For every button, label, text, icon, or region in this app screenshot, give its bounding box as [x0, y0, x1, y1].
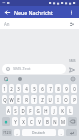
staticText: 2: [10, 86, 13, 92]
staticText: W: [9, 97, 14, 103]
staticText: U: [48, 97, 52, 103]
staticText: ?123: [3, 130, 11, 135]
staticText: H: [44, 108, 48, 114]
button[interactable]: C: [28, 117, 34, 126]
staticText: 7: [49, 86, 52, 92]
staticText: Neue Nachricht: [14, 9, 53, 16]
button[interactable]: Q: [2, 95, 7, 104]
button[interactable]: V: [36, 117, 42, 126]
staticText: ,: [16, 130, 18, 136]
staticText: C: [30, 119, 33, 125]
staticText: .: [60, 130, 62, 136]
button[interactable]: O: [63, 95, 69, 104]
button[interactable]: 6: [39, 84, 45, 93]
staticText: E: [17, 97, 20, 103]
button[interactable]: D: [20, 106, 25, 115]
button[interactable]: 9: [63, 84, 69, 93]
button[interactable]: R: [23, 95, 29, 104]
button[interactable]: Send: [66, 64, 77, 75]
staticText: T: [33, 97, 36, 103]
staticText: B: [46, 119, 49, 125]
staticText: X: [22, 119, 25, 125]
staticText: Q: [3, 97, 7, 103]
button[interactable]: N: [52, 117, 58, 126]
staticText: Z: [41, 97, 44, 103]
button[interactable]: F: [27, 106, 33, 115]
button[interactable]: H: [43, 106, 49, 115]
button[interactable]: Deutsch: [22, 129, 56, 136]
button[interactable]: E: [16, 95, 21, 104]
staticText: 9: [65, 86, 68, 92]
staticText: 1: [3, 86, 6, 92]
staticText: 8: [57, 86, 60, 92]
button[interactable]: Back: [3, 8, 12, 17]
staticText: M: [61, 119, 65, 125]
button[interactable]: Z: [39, 95, 45, 104]
button[interactable]: Backspace: [68, 117, 77, 126]
staticText: 0: [73, 86, 76, 92]
button[interactable]: 8: [55, 84, 61, 93]
staticText: K: [61, 108, 64, 114]
button[interactable]: 2: [9, 84, 14, 93]
button[interactable]: S: [13, 106, 18, 115]
staticText: 6: [41, 86, 44, 92]
staticText: A: [7, 108, 10, 114]
button[interactable]: U: [47, 95, 53, 104]
button[interactable]: G: [35, 106, 41, 115]
button[interactable]: B: [44, 117, 50, 126]
button[interactable]: Add contact: [67, 20, 75, 28]
staticText: F: [29, 108, 32, 114]
button[interactable]: 1: [2, 84, 7, 93]
button[interactable]: 3: [16, 84, 21, 93]
staticText: 5: [33, 86, 36, 92]
staticText: 4: [25, 86, 28, 92]
button[interactable]: M: [60, 117, 66, 126]
staticText: J: [53, 108, 55, 114]
button[interactable]: More options: [67, 8, 76, 17]
staticText: P: [73, 97, 76, 103]
button[interactable]: Keyboard settings: [70, 76, 76, 82]
button[interactable]: .: [58, 129, 64, 136]
button[interactable]: Y: [12, 117, 18, 126]
staticText: Y: [14, 119, 17, 125]
staticText: An: [4, 21, 10, 27]
staticText: V: [38, 119, 41, 125]
button[interactable]: A: [6, 106, 11, 115]
staticText: S: [14, 108, 17, 114]
button[interactable]: 4: [23, 84, 29, 93]
staticText: G: [36, 108, 40, 114]
button[interactable]: W: [9, 95, 14, 104]
button[interactable]: Clipboard: [3, 76, 9, 82]
button[interactable]: ,: [14, 129, 20, 136]
staticText: Deutsch: [32, 130, 46, 135]
button[interactable]: X: [20, 117, 26, 126]
button[interactable]: J: [51, 106, 57, 115]
staticText: D: [21, 108, 25, 114]
button[interactable]: I: [55, 95, 61, 104]
button[interactable]: An: [4, 18, 75, 29]
button[interactable]: Shift: [2, 117, 10, 126]
staticText: L: [69, 108, 72, 114]
button[interactable]: ?123: [2, 129, 12, 136]
staticText: O: [64, 97, 68, 103]
staticText: 3: [17, 86, 20, 92]
button[interactable]: 0: [71, 84, 77, 93]
button[interactable]: P: [71, 95, 77, 104]
button[interactable]: Emoji: [5, 66, 11, 72]
staticText: N: [53, 119, 57, 125]
button[interactable]: 5: [31, 84, 37, 93]
button[interactable]: L: [67, 106, 73, 115]
button[interactable]: 7: [47, 84, 53, 93]
button[interactable]: K: [59, 106, 65, 115]
staticText: SMS: [69, 59, 76, 63]
button[interactable]: Emoji: [2, 64, 66, 74]
staticText: I: [57, 97, 59, 103]
staticText: R: [25, 97, 28, 103]
button[interactable]: T: [31, 95, 37, 104]
staticText: SMS-Text: [13, 66, 31, 72]
button[interactable]: Enter: [66, 129, 77, 136]
